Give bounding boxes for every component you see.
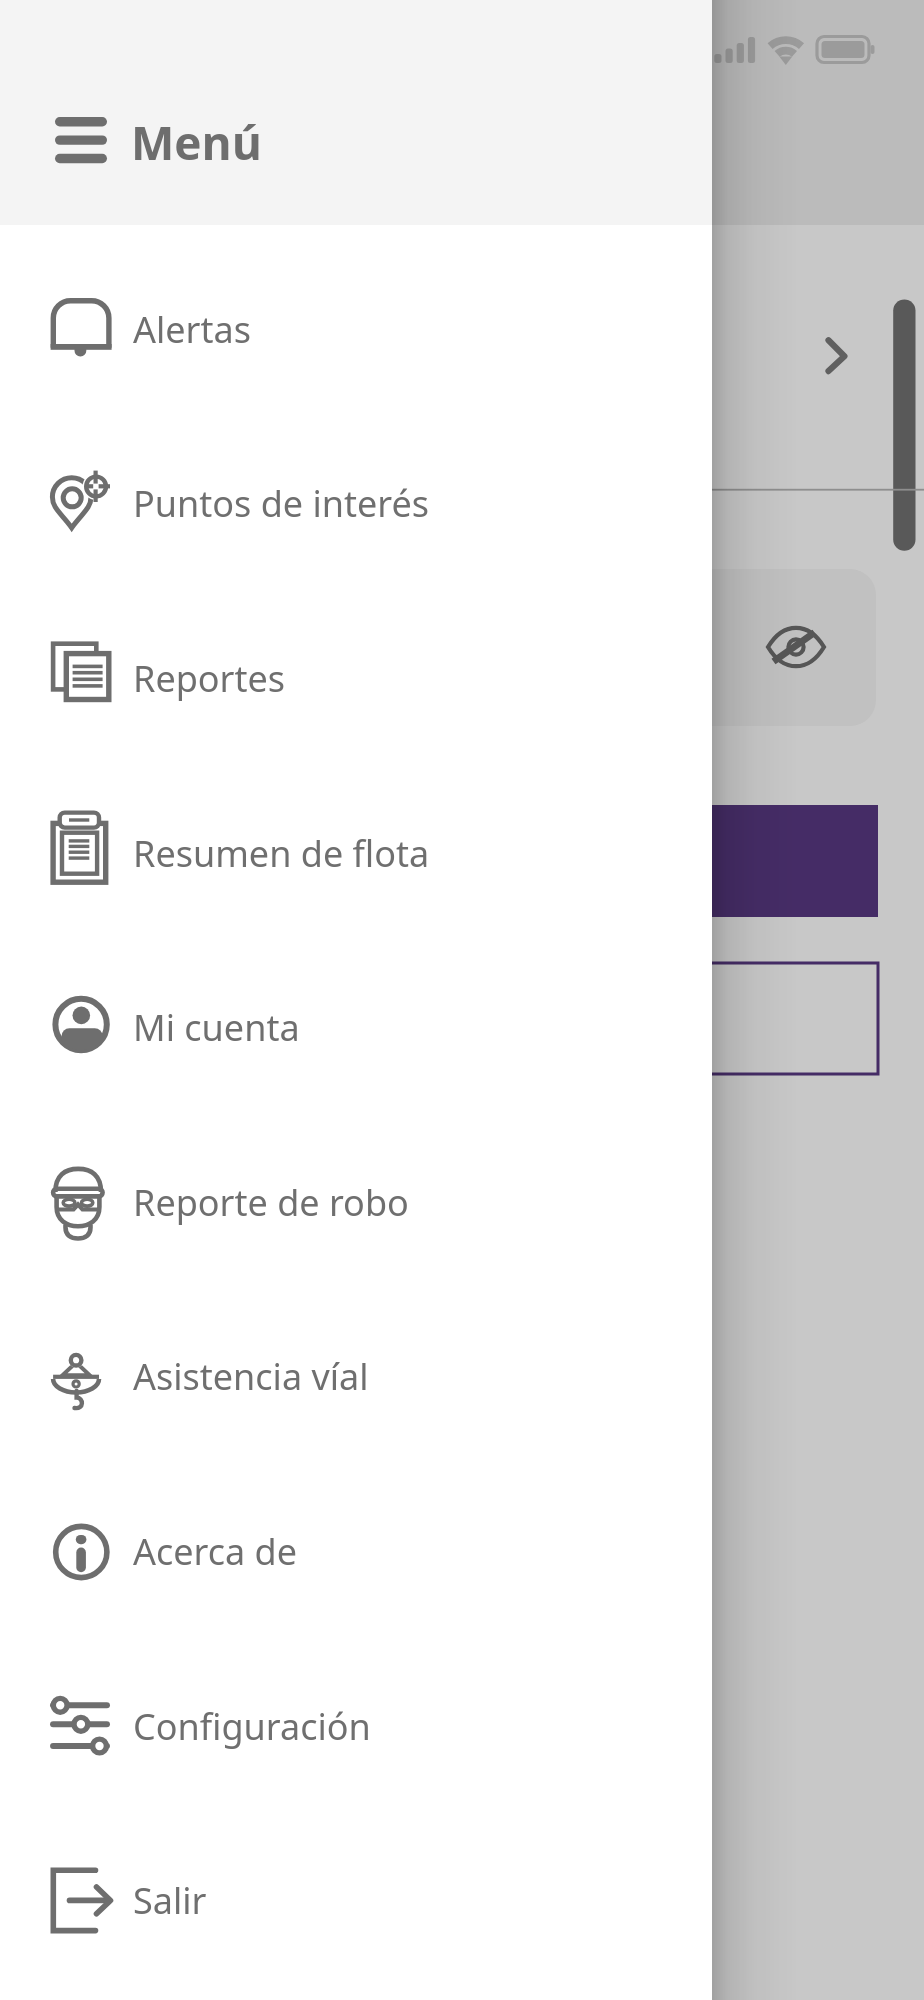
staticText: Resumen de flota bbox=[133, 829, 430, 878]
staticText: Alertas bbox=[133, 305, 251, 354]
button[interactable]: Configuración bbox=[0, 1639, 712, 1814]
button[interactable]: Mi cuenta bbox=[0, 940, 712, 1115]
button[interactable]: Reporte de robo bbox=[0, 1115, 712, 1290]
button[interactable]: Salir bbox=[0, 1813, 712, 1988]
staticText: Reportes bbox=[133, 654, 286, 703]
button[interactable]: Asistencia víal bbox=[0, 1289, 712, 1464]
staticText: Configuración bbox=[133, 1702, 371, 1751]
staticText: Reporte de robo bbox=[133, 1178, 409, 1227]
button[interactable]: Menu bbox=[0, 107, 712, 173]
button[interactable]: Acerca de bbox=[0, 1464, 712, 1639]
button[interactable]: Alertas bbox=[0, 242, 712, 417]
button[interactable]: Reportes bbox=[0, 591, 712, 766]
staticText: Menú bbox=[131, 111, 263, 174]
staticText: Asistencia víal bbox=[133, 1352, 369, 1401]
button[interactable]: Puntos de interés bbox=[0, 416, 712, 591]
other: Menu bbox=[55, 117, 107, 163]
staticText: Acerca de bbox=[133, 1527, 298, 1576]
button[interactable]: Resumen de flota bbox=[0, 766, 712, 941]
staticText: Puntos de interés bbox=[133, 479, 429, 528]
staticText: Salir bbox=[133, 1876, 207, 1925]
staticText: Mi cuenta bbox=[133, 1003, 300, 1052]
